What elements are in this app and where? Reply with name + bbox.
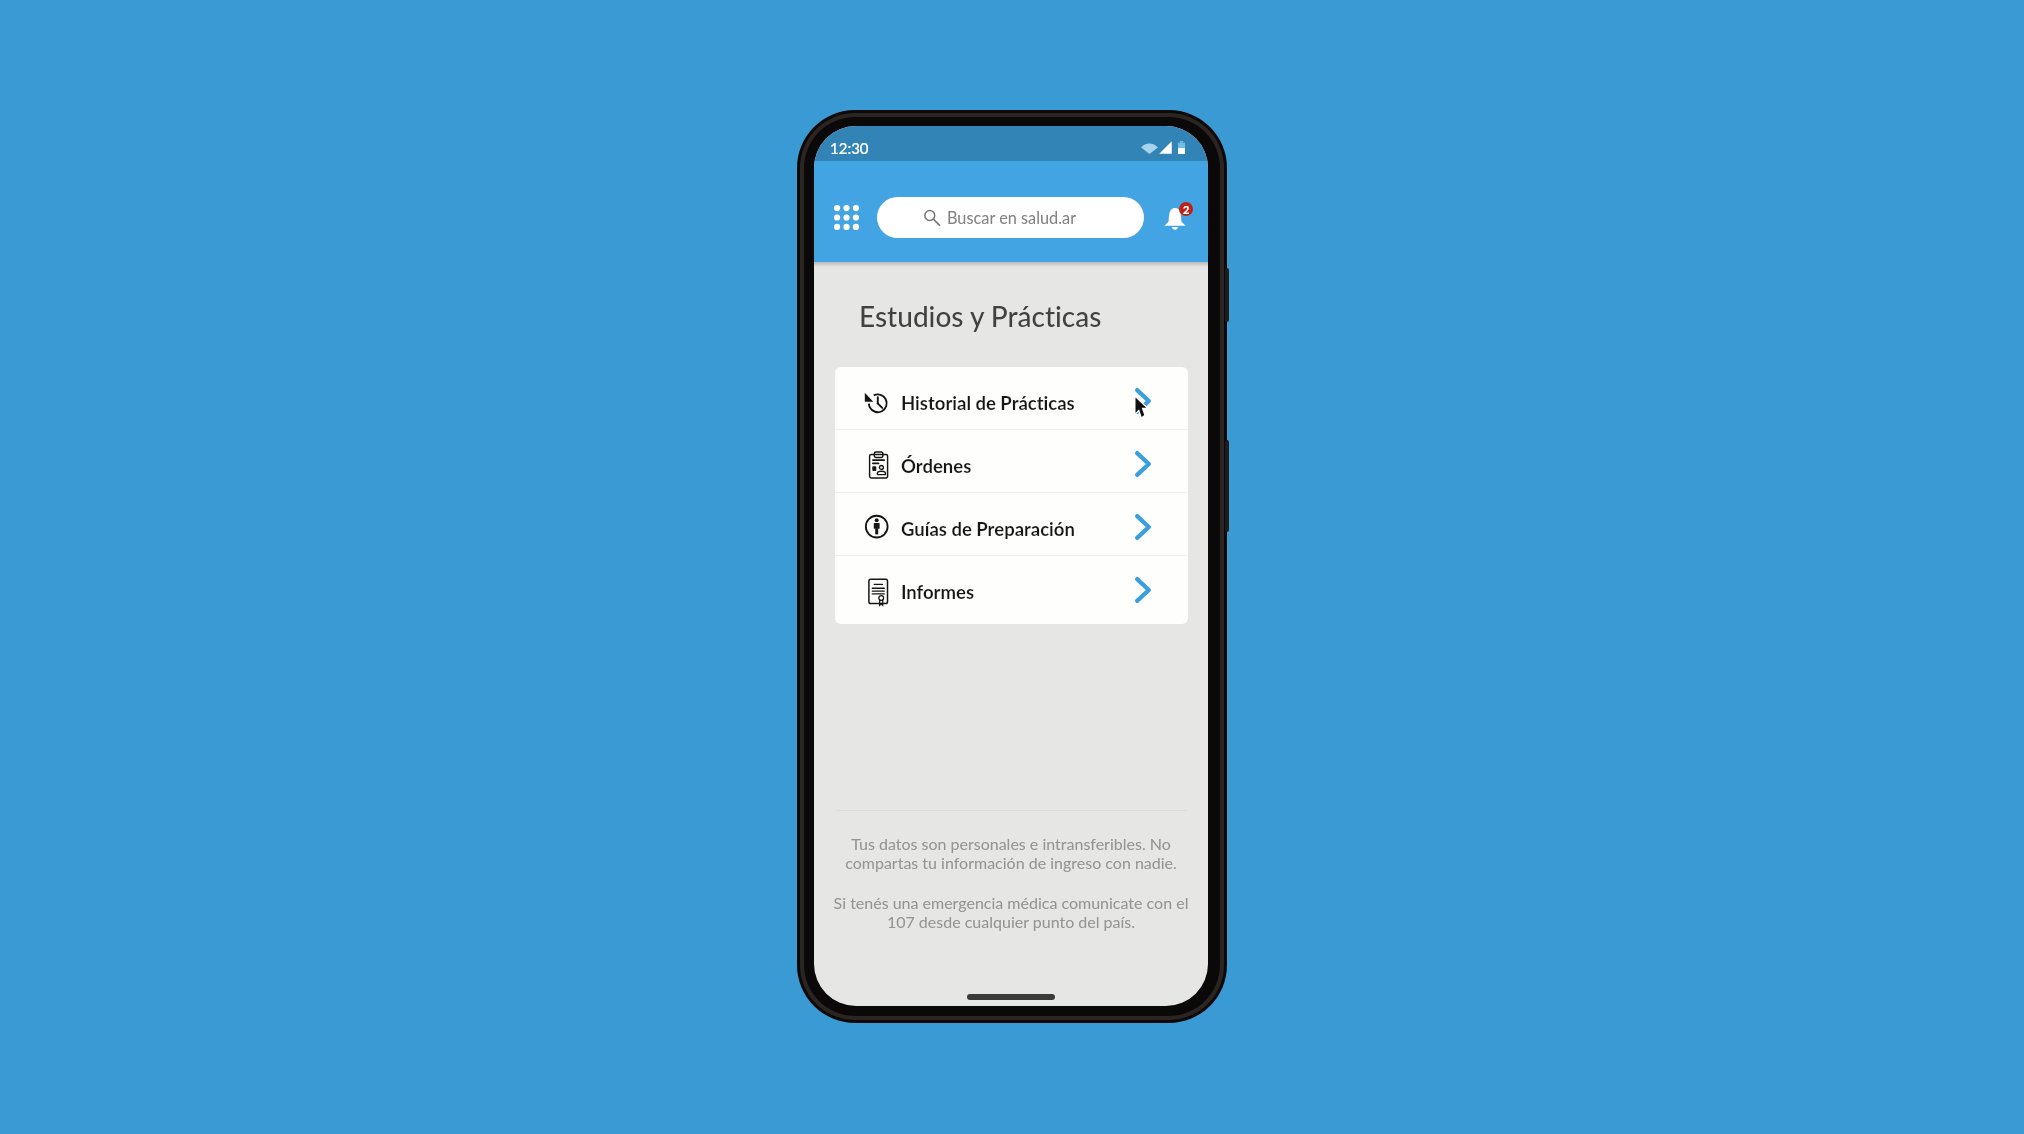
button[interactable]: Informes — [835, 556, 1188, 618]
staticText: Historial de Prácticas — [901, 392, 1075, 414]
staticText: Informes — [901, 581, 975, 603]
staticText: Si tenés una emergencia médica comunicat… — [830, 893, 1192, 932]
staticText: Buscar en salud.ar — [947, 208, 1077, 228]
staticText: Guías de Preparación — [901, 518, 1075, 540]
staticText: Órdenes — [901, 455, 972, 477]
button[interactable]: Buscar en salud.ar — [877, 197, 1144, 238]
button[interactable]: Notificaciones — [1152, 194, 1200, 242]
button[interactable]: Órdenes — [835, 430, 1188, 492]
button[interactable]: Guías de Preparación — [835, 493, 1188, 555]
staticText: Tus datos son personales e intransferibl… — [830, 834, 1192, 873]
staticText: 12:30 — [830, 139, 869, 157]
button[interactable]: Historial de Prácticas — [835, 367, 1188, 429]
staticText: 2 — [1183, 203, 1190, 216]
button[interactable]: Menú de aplicaciones — [822, 193, 870, 241]
staticText: Estudios y Prácticas — [859, 299, 1102, 333]
